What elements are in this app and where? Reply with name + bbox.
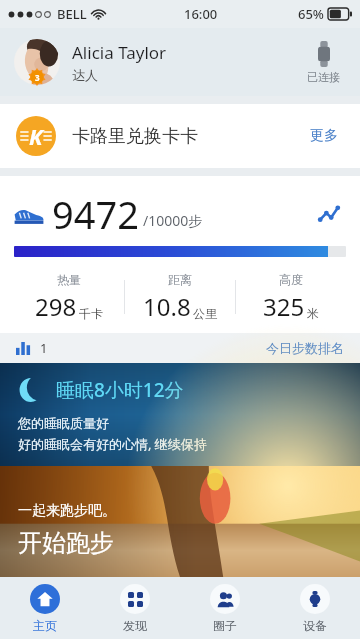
staticText: 1 <box>40 339 48 357</box>
staticText: 发现 <box>123 618 147 633</box>
staticText: 10.8 <box>143 290 191 323</box>
button[interactable]: K <box>0 104 360 168</box>
staticText: 热量 <box>57 272 81 287</box>
staticText: Alicia Taylor <box>72 41 167 64</box>
button[interactable]: 3 <box>0 28 360 96</box>
button[interactable]: 热量 <box>14 272 124 323</box>
staticText: 米 <box>307 306 319 321</box>
staticText: 距离 <box>168 272 192 287</box>
button[interactable]: 距离 <box>125 272 235 323</box>
staticText: 325 <box>263 290 305 323</box>
button[interactable]: 设备 <box>270 577 360 639</box>
staticText: 主页 <box>33 618 57 633</box>
staticText: 公里 <box>193 306 217 321</box>
staticText: 9472 <box>52 188 139 240</box>
staticText: 达人 <box>72 67 98 83</box>
button[interactable]: 9472 <box>0 176 360 333</box>
staticText: 高度 <box>279 272 303 287</box>
staticText: 今日步数排名 <box>266 340 344 356</box>
staticText: /10000步 <box>143 211 203 230</box>
staticText: 3 <box>35 72 40 83</box>
staticText: 更多 <box>310 127 338 145</box>
staticText: 开始跑步 <box>18 528 114 558</box>
staticText: 设备 <box>303 618 327 633</box>
staticText: 卡路里兑换卡卡 <box>72 125 198 148</box>
staticText: 千卡 <box>79 306 103 321</box>
button[interactable]: 一起来跑步吧。 <box>0 466 360 577</box>
staticText: 睡眠8小时12分 <box>56 377 184 403</box>
staticText: 您的睡眠质量好 <box>18 415 109 431</box>
staticText: 已连接 <box>307 70 340 84</box>
staticText: BELL <box>57 5 87 23</box>
staticText: K <box>29 121 43 151</box>
button[interactable]: 更多 <box>304 121 344 151</box>
button[interactable]: Step trend chart <box>312 197 346 231</box>
staticText: 一起来跑步吧。 <box>18 502 116 520</box>
staticText: 65% <box>298 5 324 23</box>
button[interactable]: 圈子 <box>180 577 270 639</box>
staticText: 298 <box>35 290 77 323</box>
staticText: 16:00 <box>184 5 218 23</box>
button[interactable]: 睡眠8小时12分 <box>0 363 360 466</box>
button[interactable]: 主页 <box>0 577 90 639</box>
button[interactable]: Device connected <box>301 37 346 88</box>
button[interactable]: 1 <box>0 333 360 363</box>
button[interactable]: 高度 <box>236 272 346 323</box>
staticText: 圈子 <box>213 618 237 633</box>
staticText: 好的睡眠会有好的心情, 继续保持 <box>18 435 207 453</box>
button[interactable]: 发现 <box>90 577 180 639</box>
